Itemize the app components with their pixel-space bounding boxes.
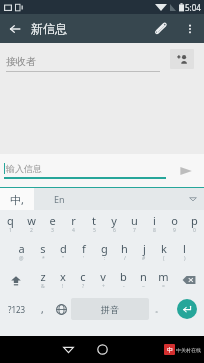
staticText: =	[162, 283, 165, 290]
staticText: l	[183, 241, 186, 256]
staticText: w	[27, 213, 36, 228]
button[interactable]: 输入信息	[4, 163, 166, 179]
staticText: p	[191, 213, 198, 228]
button[interactable]: p	[184, 210, 204, 238]
staticText: ,	[41, 302, 44, 316]
button[interactable]: ?123	[0, 294, 34, 324]
staticText: x	[60, 269, 66, 284]
staticText: a	[18, 241, 25, 256]
button[interactable]: f	[74, 238, 94, 266]
button[interactable]: 中,	[0, 188, 34, 210]
staticText: &	[41, 283, 45, 290]
button[interactable]: x	[53, 266, 73, 294]
button[interactable]: 拼音	[71, 298, 149, 320]
button[interactable]: j	[134, 238, 154, 266]
button[interactable]: u	[124, 210, 144, 238]
staticText: /	[124, 255, 126, 262]
staticText: y	[111, 213, 117, 228]
staticText: s	[40, 241, 46, 256]
staticText: *	[42, 255, 45, 262]
button[interactable]: ,	[34, 294, 51, 324]
staticText: 。	[155, 304, 163, 314]
staticText: 2	[30, 227, 33, 234]
button[interactable]: 。	[149, 294, 169, 324]
button[interactable]: En	[34, 188, 182, 210]
button[interactable]: k	[154, 238, 174, 266]
button[interactable]: z	[32, 266, 53, 294]
button[interactable]: Back	[55, 336, 82, 363]
button[interactable]: d	[53, 238, 74, 266]
staticText: 3	[51, 227, 54, 234]
button[interactable]: Back	[0, 14, 29, 43]
button[interactable]: a	[11, 238, 32, 266]
button[interactable]: Add contact	[170, 49, 194, 69]
staticText: 5	[93, 227, 96, 234]
button[interactable]: g	[94, 238, 114, 266]
button[interactable]: n	[133, 266, 153, 294]
button[interactable]: Backspace	[173, 266, 204, 294]
staticText: b	[120, 269, 127, 284]
staticText: 9	[173, 227, 176, 234]
staticText: #	[142, 255, 146, 262]
staticText: 6	[113, 227, 116, 234]
staticText: 中	[167, 346, 173, 354]
staticText: h	[121, 241, 128, 256]
button[interactable]: l	[174, 238, 194, 266]
staticText: e	[49, 213, 56, 228]
staticText: )	[184, 255, 186, 262]
button[interactable]: 接收者	[6, 55, 160, 72]
button[interactable]: Send	[174, 159, 198, 183]
staticText: ~	[142, 283, 145, 290]
button[interactable]: h	[114, 238, 134, 266]
staticText: -	[123, 283, 125, 290]
staticText: ?123	[8, 304, 26, 315]
staticText: 新信息	[31, 21, 67, 36]
staticText: m	[158, 269, 169, 284]
staticText: t	[92, 213, 96, 228]
staticText: d	[60, 241, 67, 256]
button[interactable]: e	[42, 210, 63, 238]
staticText: c	[80, 269, 86, 284]
staticText: j	[143, 241, 146, 256]
button[interactable]: w	[21, 210, 42, 238]
button[interactable]: m	[153, 266, 173, 294]
staticText: v	[100, 269, 106, 284]
button[interactable]: r	[63, 210, 84, 238]
staticText: @	[19, 255, 24, 262]
staticText: En	[54, 193, 65, 205]
button[interactable]: Home	[89, 336, 116, 363]
button[interactable]: s	[32, 238, 53, 266]
staticText: 1	[9, 227, 12, 234]
button[interactable]: t	[84, 210, 104, 238]
staticText: '	[83, 255, 85, 262]
button[interactable]: More options	[175, 14, 204, 43]
staticText: (	[163, 255, 165, 262]
button[interactable]: q	[0, 210, 21, 238]
staticText: 中,	[10, 192, 24, 207]
button[interactable]: y	[104, 210, 124, 238]
staticText: q	[7, 213, 14, 228]
staticText: o	[171, 213, 178, 228]
staticText: g	[101, 241, 108, 256]
button[interactable]: i	[144, 210, 164, 238]
button[interactable]: Change language	[51, 294, 71, 324]
staticText: "	[62, 255, 65, 262]
staticText: 8	[153, 227, 156, 234]
staticText: r	[71, 213, 76, 228]
staticText: 拼音	[101, 304, 119, 315]
staticText: u	[131, 213, 138, 228]
staticText: 0	[193, 227, 196, 234]
button[interactable]: b	[113, 266, 133, 294]
button[interactable]: Shift	[0, 266, 32, 294]
staticText: k	[161, 241, 167, 256]
button[interactable]: c	[73, 266, 93, 294]
button[interactable]: Enter	[177, 299, 197, 319]
button[interactable]: v	[93, 266, 113, 294]
button[interactable]: o	[164, 210, 184, 238]
staticText: n	[140, 269, 147, 284]
staticText: 4	[72, 227, 75, 234]
button[interactable]: Expand suggestions	[182, 188, 204, 210]
button[interactable]: Attach	[146, 14, 175, 43]
staticText: ?	[82, 283, 85, 290]
staticText: 中关村在线	[176, 347, 201, 353]
